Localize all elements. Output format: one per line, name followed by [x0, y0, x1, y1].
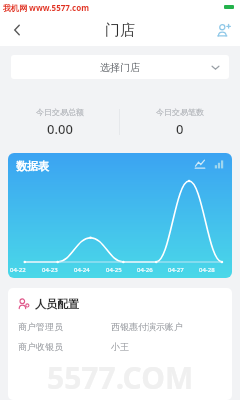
button[interactable]: 选择门店 — [11, 55, 229, 79]
staticText: 西银惠付演示账户 — [111, 321, 222, 332]
staticText: 选择门店 — [100, 61, 140, 74]
staticText: 商户管理员 — [18, 321, 111, 332]
staticText: 小王 — [111, 341, 222, 352]
button[interactable]: Line chart — [194, 158, 206, 170]
staticText: 04-22 — [10, 266, 42, 274]
staticText: 人员配置 — [35, 297, 79, 311]
button[interactable]: Add member — [206, 14, 240, 46]
staticText: 04-23 — [42, 266, 74, 274]
staticText: 04-25 — [106, 266, 137, 274]
staticText: 门店 — [105, 21, 135, 40]
staticText: 我机网 www.5577.com — [3, 2, 90, 13]
staticText: 商户收银员 — [18, 341, 111, 352]
staticText: 04-28 — [199, 266, 230, 274]
button[interactable]: 商户管理员 — [18, 321, 222, 332]
staticText: 04-24 — [74, 266, 106, 274]
button[interactable]: 数据表 — [8, 153, 232, 278]
staticText: 0.00 — [47, 120, 73, 138]
button[interactable]: Bar chart — [213, 158, 225, 170]
button[interactable]: Back — [0, 14, 34, 46]
staticText: 数据表 — [16, 159, 49, 173]
staticText: 今日交易笔数 — [156, 107, 204, 117]
staticText: 今日交易总额 — [36, 107, 84, 117]
staticText: 0 — [176, 120, 184, 138]
button[interactable]: 今日交易笔数 — [120, 107, 240, 138]
staticText: 04-27 — [168, 266, 199, 274]
button[interactable]: 今日交易总额 — [0, 107, 119, 138]
staticText: 04-26 — [137, 266, 168, 274]
staticText: 5577.COM — [47, 357, 194, 398]
button[interactable]: 商户收银员 — [18, 341, 222, 352]
